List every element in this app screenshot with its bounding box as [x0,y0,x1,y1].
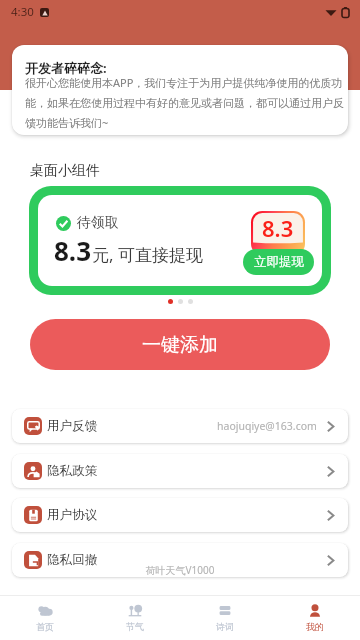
button[interactable]: 一键添加 [30,319,330,370]
staticText: 用户反馈 [47,418,98,434]
staticText: 待领取 [77,214,119,232]
button[interactable]: 节气 [90,596,180,640]
staticText: 8.3 [262,213,294,243]
button[interactable]: 立即提现 [243,249,314,275]
button[interactable]: 隐私政策 [12,454,348,488]
button[interactable]: 待领取 [38,195,322,286]
staticText: 诗词 [216,621,234,632]
button[interactable]: 隐私回撤 [12,543,348,577]
staticText: 节气 [126,621,144,632]
button[interactable]: 用户协议 [12,498,348,532]
button[interactable]: 首页 [0,596,90,640]
staticText: 8.3 [54,233,92,268]
staticText: 元, 可直接提现 [92,243,203,266]
staticText: haojuqiye@163.com [217,419,317,433]
staticText: 开发者碎碎念: [25,59,107,77]
staticText: 桌面小组件 [30,162,100,180]
staticText: 我的 [306,621,324,632]
staticText: 4:30 [11,4,34,20]
staticText: 荷叶天气V1000 [0,563,360,577]
staticText: 隐私政策 [47,463,98,479]
button[interactable]: 用户反馈 [12,409,348,443]
staticText: 立即提现 [254,254,304,270]
staticText: 隐私回撤 [47,552,98,568]
button[interactable]: 我的 [270,596,360,640]
staticText: 用户协议 [47,507,98,523]
staticText: 一键添加 [142,333,218,357]
staticText: 很开心您能使用本APP，我们专注于为用户提供纯净使用的优质功能，如果在您使用过程… [25,75,345,131]
button[interactable]: 诗词 [180,596,270,640]
staticText: 首页 [36,621,54,632]
